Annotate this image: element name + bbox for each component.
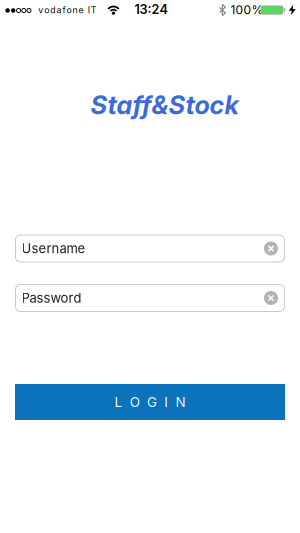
staticText: O (130, 394, 140, 410)
staticText: Staff&Stock (90, 90, 238, 120)
button[interactable]: Username (15, 235, 284, 262)
staticText: N (176, 394, 186, 410)
button[interactable]: L (15, 384, 285, 420)
staticText: L (114, 394, 122, 410)
staticText: Password (21, 290, 81, 306)
staticText: I (164, 394, 168, 410)
staticText: G (147, 394, 157, 410)
staticText: Username (21, 241, 85, 256)
staticText: 13:24 (134, 2, 167, 17)
button[interactable]: Clear text (264, 291, 278, 305)
staticText: 100% (230, 3, 263, 17)
button[interactable]: Clear text (264, 241, 278, 255)
staticText: vodafone IT (38, 5, 97, 15)
button[interactable]: Password (15, 284, 284, 311)
